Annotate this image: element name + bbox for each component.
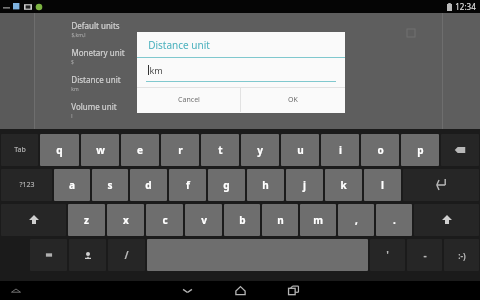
button[interactable]: / [108,239,145,271]
button[interactable]: k [325,169,362,201]
button[interactable]: o [361,134,399,166]
button[interactable]: i [321,134,359,166]
button[interactable]: ?123 [1,169,52,201]
staticText: Default units [71,20,120,31]
staticText: d [145,178,152,192]
button[interactable]: , [338,204,374,236]
button[interactable]: Recent apps [283,281,303,300]
staticText: x [123,213,129,227]
button[interactable]: Monetary unit [71,43,442,70]
button[interactable]: Voice input [69,239,106,271]
button[interactable]: t [201,134,239,166]
staticText: s [107,178,113,192]
staticText: OK [288,95,298,105]
staticText: ?123 [19,180,35,190]
button[interactable]: c [146,204,183,236]
staticText: , [355,213,358,227]
button[interactable]: m [300,204,336,236]
staticText: Cancel [178,95,200,105]
button[interactable]: n [262,204,298,236]
button[interactable]: Overflow [405,27,417,39]
button[interactable]: ' [370,239,405,271]
staticText: / [124,248,129,262]
button[interactable]: Keyboard settings [30,239,67,271]
staticText: ' [386,248,389,262]
staticText: b [239,213,246,227]
button[interactable]: Menu [8,283,24,299]
button[interactable]: - [407,239,442,271]
button[interactable]: p [401,134,439,166]
button[interactable]: s [92,169,128,201]
button[interactable]: km [137,58,345,82]
staticText: 12:34 [455,1,476,12]
staticText: e [137,143,143,157]
button[interactable]: d [130,169,167,201]
staticText: Distance unit [148,38,210,52]
button[interactable]: Default units [71,16,442,43]
staticText: v [201,213,207,227]
button[interactable]: Home [230,281,250,300]
staticText: Volume unit [71,101,117,112]
staticText: km [71,86,79,93]
button[interactable]: . [376,204,412,236]
staticText: . [393,213,396,227]
button[interactable]: u [281,134,319,166]
button[interactable]: :-) [444,239,479,271]
button[interactable]: Hide keyboard [177,281,197,300]
staticText: m [313,213,323,227]
staticText: k [340,178,347,192]
button[interactable]: b [224,204,260,236]
button[interactable]: Cancel [137,88,240,112]
button[interactable]: Tab [1,134,38,166]
button[interactable]: y [241,134,279,166]
button[interactable]: v [185,204,222,236]
staticText: $ [71,59,74,66]
button[interactable]: Shift [414,204,479,236]
button[interactable]: q [40,134,79,166]
button[interactable]: Backspace [441,134,479,166]
staticText: :-) [458,250,466,261]
button[interactable]: Distance unit [71,70,442,97]
staticText: z [84,213,89,227]
staticText: l [381,178,384,192]
staticText: q [56,143,63,157]
staticText: i [339,143,342,157]
staticText: u [297,143,304,157]
button[interactable]: e [121,134,159,166]
staticText: h [262,178,269,192]
button[interactable]: l [364,169,401,201]
button[interactable]: g [208,169,245,201]
staticText: - [423,248,427,262]
button[interactable]: r [161,134,199,166]
button[interactable]: z [68,204,105,236]
staticText: l [71,113,73,120]
button[interactable]: j [286,169,323,201]
staticText: Tab [14,145,26,155]
staticText: t [218,143,223,157]
staticText: km [149,64,163,76]
staticText: n [277,213,284,227]
staticText: a [69,178,75,192]
staticText: o [377,143,384,157]
button[interactable]: x [107,204,144,236]
staticText: f [186,178,190,192]
staticText: Distance unit [71,74,121,85]
staticText: j [303,178,306,192]
button[interactable]: OK [241,88,345,112]
button[interactable]: h [247,169,284,201]
staticText: Monetary unit [71,47,125,58]
staticText: w [96,143,105,157]
button[interactable]: f [169,169,206,201]
staticText: $,km,l [71,32,86,39]
staticText: p [417,143,424,157]
button[interactable]: Enter [403,169,479,201]
button[interactable]: Shift [1,204,66,236]
staticText: g [223,178,230,192]
staticText: c [162,213,168,227]
button[interactable]: a [54,169,90,201]
staticText: y [257,143,263,157]
button[interactable]: w [81,134,119,166]
button[interactable]: Volume unit [71,97,442,124]
staticText: r [178,143,183,157]
